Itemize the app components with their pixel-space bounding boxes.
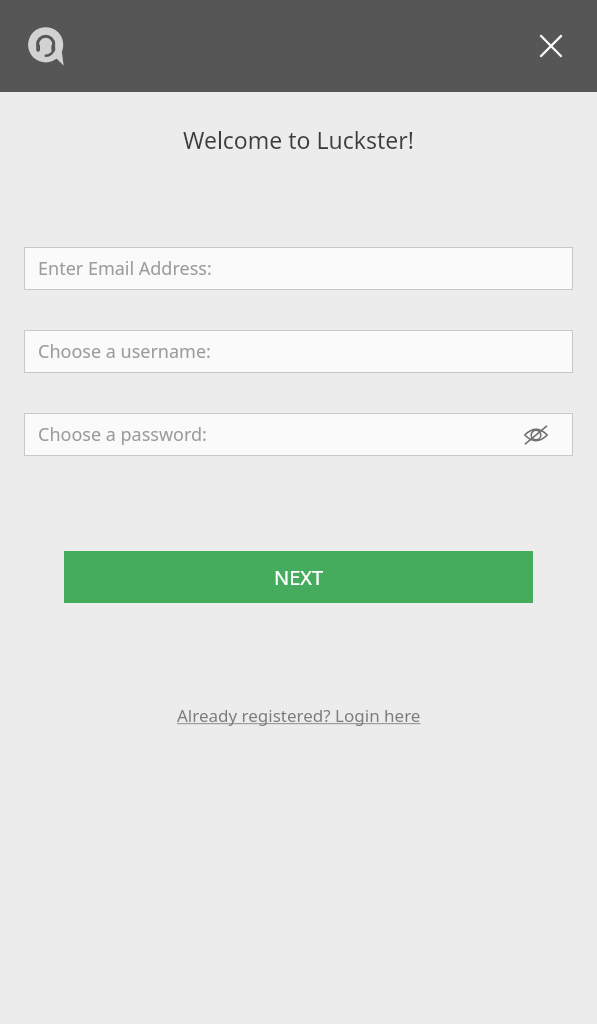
button[interactable]: Show password [521, 420, 551, 450]
button[interactable]: Support chat [24, 24, 70, 70]
button[interactable]: Close [527, 22, 575, 70]
button[interactable]: Already registered? Login here [167, 700, 431, 731]
button[interactable]: Choose a username: [24, 330, 573, 373]
staticText: Welcome to Luckster! [0, 124, 597, 155]
staticText: Choose a password: [38, 422, 207, 447]
staticText: Choose a username: [38, 339, 211, 364]
button[interactable]: Choose a password: [24, 413, 573, 456]
button[interactable]: Enter Email Address: [24, 247, 573, 290]
button[interactable]: NEXT [64, 551, 533, 603]
staticText: Enter Email Address: [38, 256, 212, 281]
staticText: Already registered? Login here [177, 704, 421, 727]
staticText: NEXT [274, 564, 324, 591]
